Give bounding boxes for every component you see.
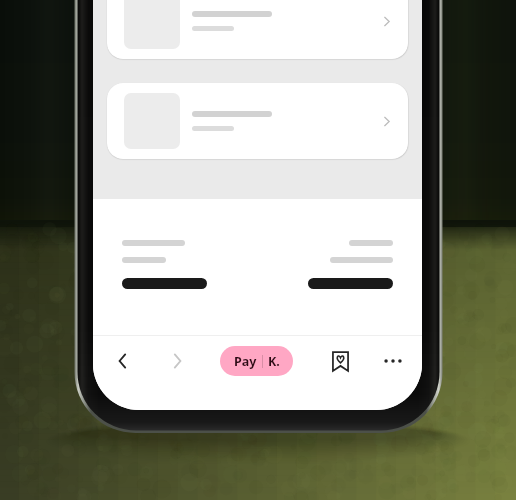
button[interactable]: Pay xyxy=(220,346,293,376)
button[interactable] xyxy=(107,83,408,159)
button[interactable]: More options xyxy=(377,345,409,377)
staticText: K. xyxy=(268,353,280,370)
button[interactable] xyxy=(107,0,408,59)
button[interactable]: Forward xyxy=(161,345,193,377)
button[interactable]: Bookmarks xyxy=(324,345,356,377)
staticText: Pay xyxy=(234,353,257,370)
button[interactable]: Back xyxy=(107,345,139,377)
